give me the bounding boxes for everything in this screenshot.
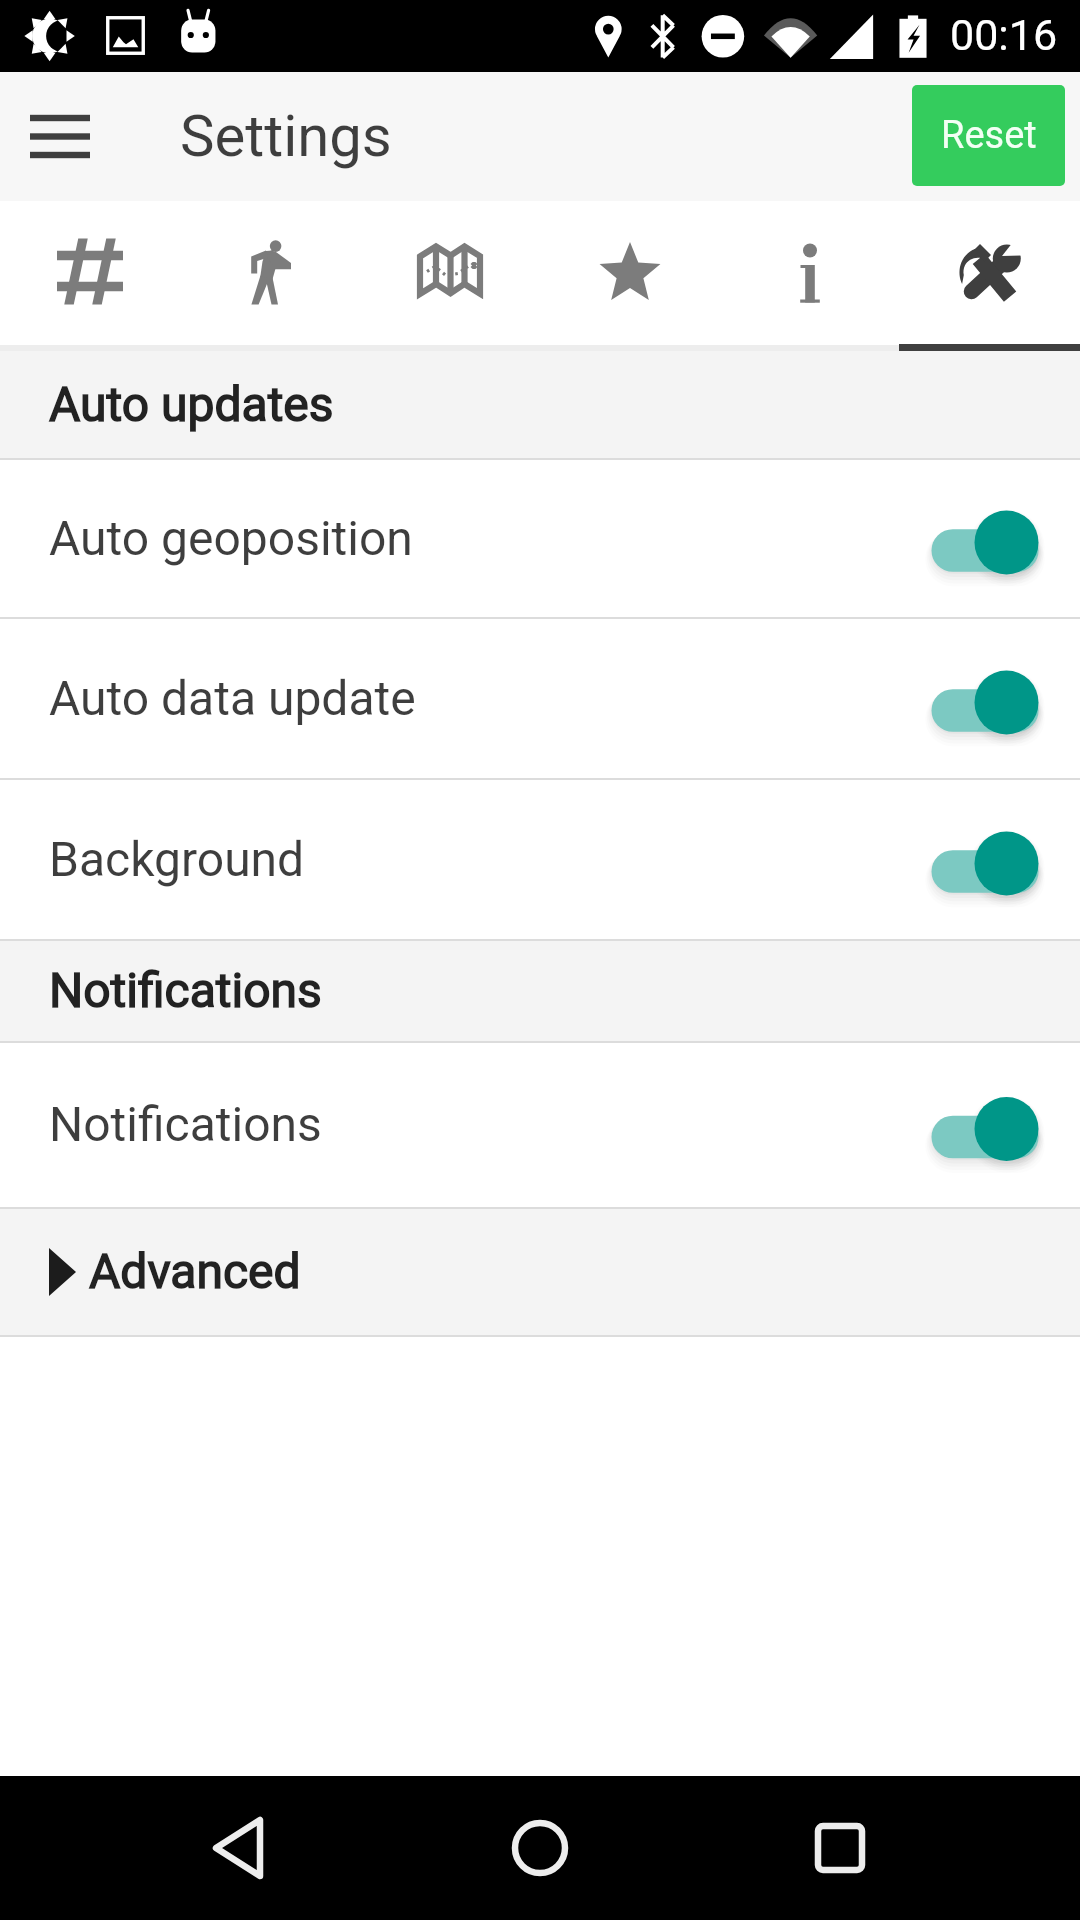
button[interactable]: Favourites tab xyxy=(540,201,720,351)
staticText: Background xyxy=(49,831,305,887)
button[interactable]: Walking tab xyxy=(180,201,360,351)
button[interactable]: Tools tab xyxy=(900,201,1080,351)
staticText: Auto data update xyxy=(49,670,416,726)
staticText: Notifications xyxy=(49,962,322,1018)
button[interactable]: Recent apps xyxy=(780,1788,900,1908)
staticText: Settings xyxy=(180,102,392,170)
button[interactable]: Home xyxy=(480,1788,600,1908)
button[interactable]: Reset xyxy=(912,85,1065,186)
staticText: Reset xyxy=(941,113,1037,158)
staticText: Auto geoposition xyxy=(49,510,413,566)
staticText: Auto updates xyxy=(49,376,334,432)
button[interactable]: Background xyxy=(0,780,1080,941)
button[interactable]: Notifications xyxy=(0,1043,1080,1209)
button[interactable]: Advanced xyxy=(0,1209,1080,1337)
button[interactable]: Info tab xyxy=(720,201,900,351)
button[interactable]: Back xyxy=(180,1788,300,1908)
button[interactable]: Auto geoposition xyxy=(0,460,1080,619)
staticText: 00:16 xyxy=(950,10,1058,60)
staticText: Notifications xyxy=(49,1096,322,1152)
button[interactable]: Map tab xyxy=(360,201,540,351)
button[interactable]: Auto data update xyxy=(0,619,1080,780)
button[interactable]: Numbers tab xyxy=(0,201,180,351)
staticText: Advanced xyxy=(89,1243,301,1299)
button[interactable]: Open navigation menu xyxy=(0,72,120,201)
